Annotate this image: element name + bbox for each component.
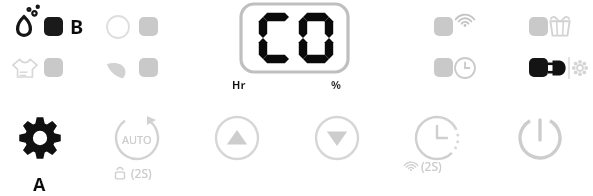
button[interactable]: Timer, hold 2 seconds for Wi-Fi: [413, 116, 461, 188]
staticText: Hr: [232, 77, 246, 92]
staticText: (2S): [421, 158, 442, 174]
staticText: (2S): [131, 165, 152, 181]
staticText: %: [331, 77, 341, 92]
button[interactable]: Decrease: [313, 116, 361, 164]
button[interactable]: Increase: [213, 116, 261, 164]
staticText: A: [33, 172, 46, 196]
button[interactable]: Power: [517, 116, 563, 164]
button[interactable]: Auto mode, hold 2 seconds for child lock: [113, 116, 161, 188]
staticText: B: [70, 13, 84, 40]
button[interactable]: Settings: [16, 116, 64, 188]
staticText: AUTO: [122, 132, 152, 147]
